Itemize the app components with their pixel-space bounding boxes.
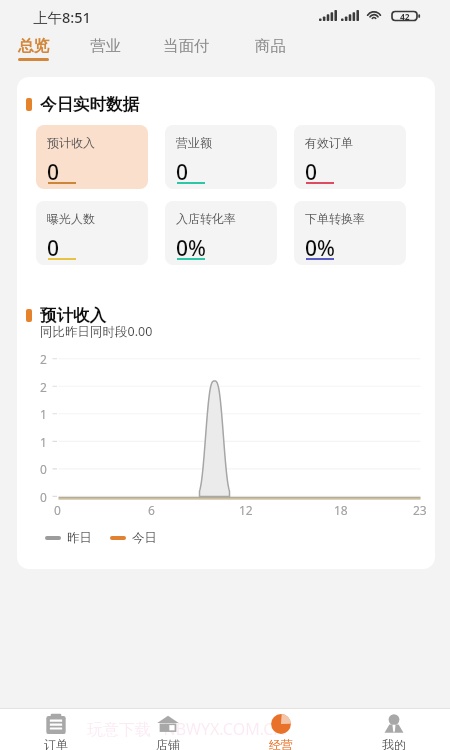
button[interactable]: 营业额: [165, 125, 277, 189]
staticText: 18: [334, 502, 348, 518]
button[interactable]: 商品: [243, 31, 297, 67]
staticText: 我的: [382, 737, 406, 750]
button[interactable]: 预计收入: [36, 125, 148, 189]
staticText: 上午8:51: [33, 7, 91, 27]
staticText: 店铺: [156, 737, 180, 750]
staticText: 0%: [176, 234, 206, 263]
staticText: 同比昨日同时段0.00: [40, 323, 153, 340]
button[interactable]: 订单: [0, 709, 112, 750]
staticText: 0: [54, 502, 61, 518]
button[interactable]: 我的: [337, 709, 450, 750]
button[interactable]: 当面付: [151, 31, 221, 67]
button[interactable]: 下单转换率: [294, 201, 406, 265]
staticText: 1: [40, 434, 47, 450]
button[interactable]: 经营: [224, 709, 337, 750]
staticText: 入店转化率: [176, 211, 236, 226]
staticText: 今日实时数据: [40, 94, 139, 115]
staticText: 12: [239, 502, 253, 518]
staticText: 0%: [305, 234, 335, 263]
staticText: 当面付: [163, 36, 210, 56]
staticText: 23: [413, 502, 427, 518]
staticText: 预计收入: [40, 305, 106, 326]
button[interactable]: 店铺: [112, 709, 224, 750]
button[interactable]: 有效订单: [294, 125, 406, 189]
staticText: 0: [40, 489, 47, 505]
staticText: 有效订单: [305, 135, 353, 150]
staticText: 0: [305, 158, 318, 187]
staticText: 42: [400, 11, 410, 23]
staticText: 下单转换率: [305, 211, 365, 226]
staticText: 营业额: [176, 135, 212, 150]
staticText: 0: [176, 158, 189, 187]
staticText: 营业: [90, 36, 121, 56]
staticText: 经营: [269, 737, 293, 750]
staticText: 1: [40, 406, 47, 422]
staticText: 玩意下载 NBWYX.COM.CN: [87, 718, 286, 740]
button[interactable]: 入店转化率: [165, 201, 277, 265]
staticText: 预计收入: [47, 135, 95, 150]
button[interactable]: 总览: [6, 31, 60, 67]
staticText: 今日: [132, 530, 157, 546]
staticText: 6: [148, 502, 155, 518]
staticText: 总览: [18, 36, 49, 56]
button[interactable]: 曝光人数: [36, 201, 148, 265]
staticText: 订单: [44, 737, 68, 750]
staticText: 曝光人数: [47, 211, 95, 226]
staticText: 0: [47, 158, 60, 187]
staticText: 昨日: [67, 530, 92, 546]
staticText: 2: [40, 379, 47, 395]
staticText: 商品: [255, 36, 286, 56]
staticText: 0: [47, 234, 60, 263]
button[interactable]: 营业: [78, 31, 132, 67]
staticText: 2: [40, 351, 47, 367]
staticText: 0: [40, 461, 47, 477]
